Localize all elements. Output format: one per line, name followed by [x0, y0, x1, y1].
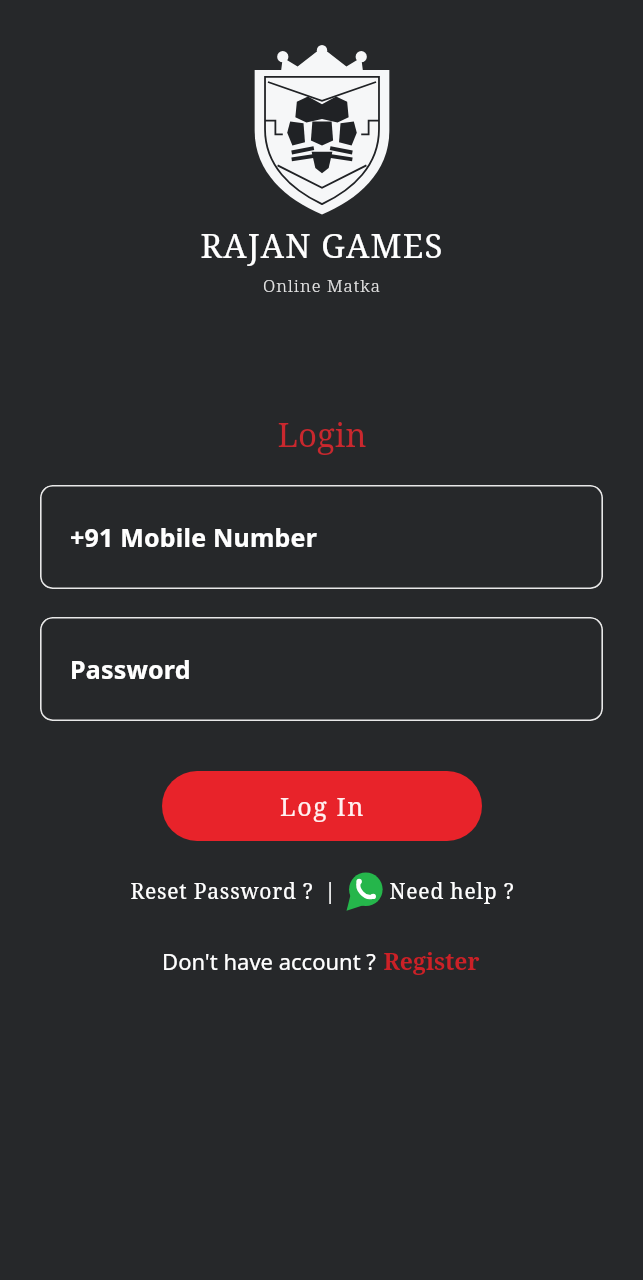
button[interactable]: Log In: [162, 771, 482, 841]
staticText: Register: [383, 945, 480, 976]
staticText: |: [324, 877, 336, 906]
staticText: Log In: [280, 789, 365, 823]
staticText: Need help ?: [389, 877, 515, 906]
button[interactable]: +91 Mobile Number: [40, 485, 603, 589]
button[interactable]: Password: [40, 617, 603, 721]
button[interactable]: Need help on WhatsApp: [344, 868, 515, 914]
staticText: Login: [277, 412, 367, 457]
button[interactable]: Register: [382, 942, 481, 979]
staticText: +91 Mobile Number: [70, 520, 318, 554]
button[interactable]: Reset Password ?: [128, 873, 316, 910]
staticText: RAJAN GAMES: [200, 223, 444, 268]
staticText: Password: [70, 652, 191, 686]
staticText: Don't have account ?: [162, 946, 376, 976]
staticText: Reset Password ?: [130, 877, 314, 906]
staticText: Online Matka: [263, 274, 381, 297]
